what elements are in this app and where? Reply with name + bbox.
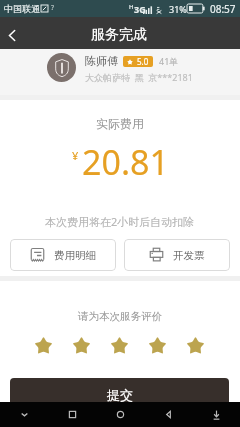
staticText: 请为本次服务评价	[78, 310, 162, 323]
staticText: ?	[51, 3, 55, 13]
button[interactable]: Rate 3 stars	[100, 334, 138, 356]
staticText: 41单	[159, 55, 179, 67]
button[interactable]: Back	[0, 21, 28, 49]
staticText: 中国联通	[4, 3, 40, 14]
button[interactable]: 费用明细	[10, 239, 116, 271]
staticText: H	[129, 3, 134, 11]
button[interactable]: 提交	[10, 378, 229, 412]
staticText: 大众帕萨特 黑 京***2181	[85, 71, 193, 83]
staticText: 3G	[134, 3, 146, 15]
staticText: 提交	[107, 387, 133, 403]
staticText: 服务完成	[91, 26, 147, 44]
staticText: 开发票	[173, 249, 205, 262]
button[interactable]: Rate 1 stars	[24, 334, 62, 356]
button[interactable]: Rate 2 stars	[62, 334, 100, 356]
button[interactable]: Home	[96, 402, 144, 427]
staticText: 费用明细	[54, 249, 96, 262]
button[interactable]: Hide keyboard	[0, 402, 48, 427]
button[interactable]: Recent apps	[48, 402, 96, 427]
staticText: ¥	[72, 148, 79, 163]
staticText: 08:57	[210, 2, 236, 16]
button[interactable]: Rate 4 stars	[138, 334, 176, 356]
staticText: 陈师傅	[85, 54, 118, 68]
staticText: 20.81	[82, 139, 169, 185]
button[interactable]: Rate 5 stars	[176, 334, 214, 356]
button[interactable]: Download	[192, 402, 240, 427]
button[interactable]: 开发票	[124, 239, 230, 271]
staticText: 5.0	[137, 56, 149, 67]
button[interactable]: Back	[144, 402, 192, 427]
staticText: 31%	[169, 3, 187, 15]
button[interactable]: 陈师傅	[0, 49, 240, 95]
staticText: 实际费用	[96, 116, 144, 131]
staticText: 本次费用将在2小时后自动扣除	[45, 214, 195, 229]
